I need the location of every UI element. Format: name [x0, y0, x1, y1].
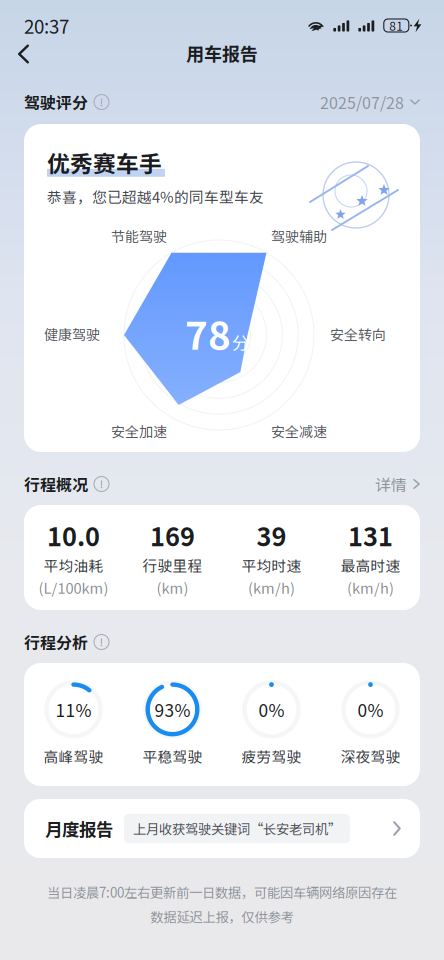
- staticText: 详情: [375, 472, 407, 496]
- staticText: 安全转向: [330, 324, 386, 344]
- staticText: 78: [185, 305, 231, 361]
- staticText: 平均油耗: [43, 555, 103, 576]
- staticText: 0%: [357, 697, 383, 722]
- staticText: (km/h): [347, 577, 394, 598]
- staticText: 11%: [55, 697, 91, 722]
- staticText: 月度报告: [45, 816, 113, 841]
- staticText: 最高时速: [340, 555, 400, 576]
- staticText: 20:37: [24, 12, 69, 39]
- staticText: 安全减速: [271, 421, 327, 441]
- staticText: 驾驶辅助: [271, 226, 327, 246]
- staticText: 高峰驾驶: [43, 745, 103, 767]
- staticText: 10.0: [47, 517, 100, 554]
- staticText: 169: [150, 517, 195, 554]
- staticText: (L/100km): [38, 577, 108, 598]
- staticText: 节能驾驶: [111, 226, 167, 246]
- staticText: 上月收获驾驶关键词“长安老司机”: [133, 819, 341, 838]
- staticText: 安全加速: [111, 421, 167, 441]
- staticText: 用车报告: [186, 40, 258, 66]
- staticText: 恭喜，您已超越4%的同车型车友: [47, 186, 264, 207]
- staticText: 行程分析: [24, 630, 88, 654]
- button[interactable]: 返回: [0, 40, 43, 73]
- staticText: 驾驶评分: [24, 90, 88, 114]
- staticText: (km/h): [248, 577, 295, 598]
- staticText: 2025/07/28: [320, 90, 404, 114]
- button[interactable]: 月度报告: [24, 799, 420, 858]
- staticText: 深夜驾驶: [340, 745, 400, 767]
- staticText: 行驶里程: [142, 555, 202, 576]
- staticText: 当日凌晨7:00左右更新前一日数据，可能因车辆网络原因存在: [47, 882, 397, 902]
- staticText: 平稳驾驶: [142, 745, 202, 767]
- staticText: (km): [156, 577, 188, 598]
- staticText: 81: [389, 17, 403, 34]
- staticText: 分: [232, 330, 249, 355]
- staticText: 93%: [154, 697, 190, 722]
- staticText: 数据延迟上报，仅供参考: [150, 907, 293, 926]
- staticText: 疲劳驾驶: [241, 745, 301, 767]
- staticText: 优秀赛车手: [47, 146, 162, 179]
- staticText: 39: [256, 517, 286, 554]
- button[interactable]: 详情: [375, 472, 420, 496]
- staticText: 行程概况: [24, 472, 88, 496]
- button[interactable]: 2025/07/28: [320, 90, 420, 114]
- staticText: 平均时速: [241, 555, 301, 576]
- staticText: 健康驾驶: [44, 324, 100, 344]
- staticText: 0%: [258, 697, 284, 722]
- staticText: 131: [348, 517, 393, 554]
